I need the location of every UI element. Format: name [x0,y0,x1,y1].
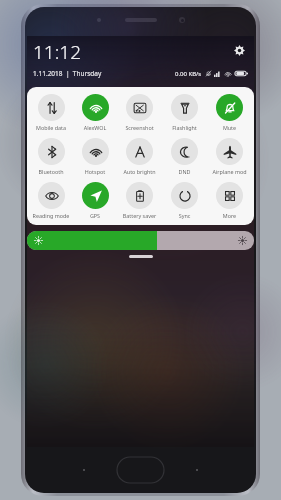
staticText: Auto brightn [117,168,162,175]
staticText: More [207,212,252,219]
button[interactable]: Brightness [27,231,254,250]
staticText: Flashlight [162,124,207,131]
button[interactable]: Airplane mod [207,138,252,175]
button[interactable]: Mute [207,94,252,131]
button[interactable]: Bluetooth [29,138,73,175]
staticText: GPS [73,212,117,219]
button[interactable]: Sync [162,182,207,219]
staticText: Battery saver [117,212,162,219]
button[interactable]: DND [162,138,207,175]
staticText: Screenshot [117,124,162,131]
staticText: 0.00 KB/s [175,70,202,78]
button[interactable]: Mobile data [29,94,73,131]
staticText: AlexWOL [73,124,117,131]
staticText: Airplane mod [207,168,252,175]
staticText: 11:12 [33,39,82,65]
staticText: Sync [162,212,207,219]
button[interactable]: Screenshot [117,94,162,131]
button[interactable]: Flashlight [162,94,207,131]
button[interactable]: Reading mode [29,182,73,219]
button[interactable]: More [207,182,252,219]
button[interactable]: Settings [230,41,248,59]
button[interactable]: AlexWOL [73,94,117,131]
button[interactable]: GPS [73,182,117,219]
staticText: Hotspot [73,168,117,175]
staticText: Mute [207,124,252,131]
button[interactable]: Hotspot [73,138,117,175]
staticText: Mobile data [29,124,73,131]
button[interactable]: Battery saver [117,182,162,219]
button[interactable]: Auto brightn [117,138,162,175]
staticText: Bluetooth [29,168,73,175]
staticText: 1.11.2018 | Thursday [33,69,102,78]
staticText: Reading mode [29,212,73,219]
staticText: DND [162,168,207,175]
